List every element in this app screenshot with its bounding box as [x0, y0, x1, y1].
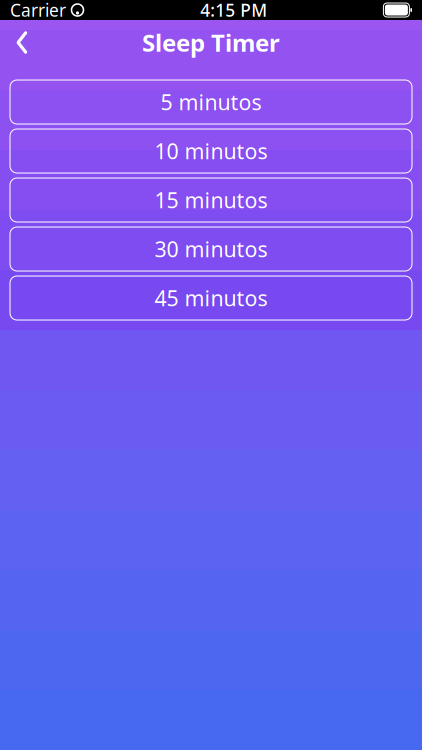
staticText: 4:15 PM [200, 0, 267, 21]
staticText: 15 minutos [154, 186, 267, 214]
staticText: 30 minutos [154, 235, 267, 263]
button[interactable]: 10 minutos [10, 129, 412, 173]
staticText: 5 minutos [160, 88, 261, 116]
button[interactable]: 45 minutos [10, 276, 412, 320]
button[interactable]: Back [0, 20, 44, 64]
button[interactable]: 5 minutos [10, 80, 412, 124]
staticText: Carrier [10, 0, 66, 21]
staticText: 10 minutos [154, 137, 267, 165]
button[interactable]: 15 minutos [10, 178, 412, 222]
button[interactable]: 30 minutos [10, 227, 412, 271]
staticText: Sleep Timer [142, 27, 280, 58]
staticText: 45 minutos [154, 284, 267, 312]
